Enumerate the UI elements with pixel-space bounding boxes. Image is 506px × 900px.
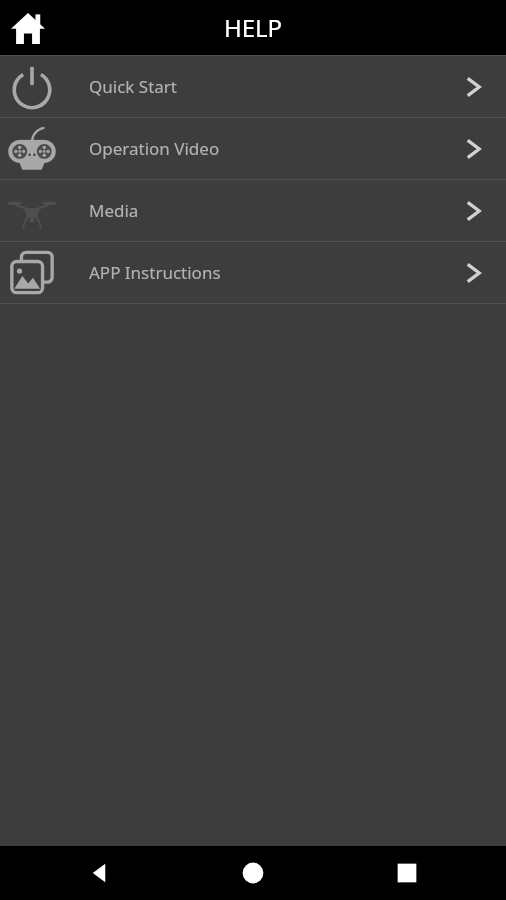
staticText: Operation Video <box>89 137 220 160</box>
button[interactable]: Quick Start <box>0 56 506 117</box>
button[interactable]: Media <box>0 180 506 241</box>
staticText: APP Instructions <box>89 261 221 284</box>
button[interactable]: Home <box>0 0 55 55</box>
staticText: HELP <box>0 11 506 44</box>
button[interactable]: Operation Video <box>0 118 506 179</box>
button[interactable]: Recent apps <box>352 846 462 900</box>
button[interactable]: Home <box>198 846 308 900</box>
staticText: Media <box>89 199 139 222</box>
button[interactable]: APP Instructions <box>0 242 506 303</box>
staticText: Quick Start <box>89 75 177 98</box>
button[interactable]: Back <box>44 846 154 900</box>
